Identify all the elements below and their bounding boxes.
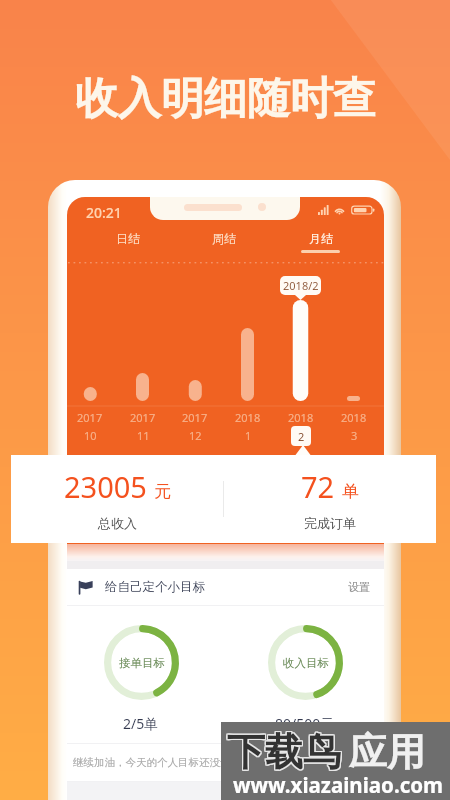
staticText: 72 xyxy=(301,467,335,506)
staticText: 下载鸟 xyxy=(226,728,340,776)
staticText: 下载鸟 xyxy=(227,728,341,776)
button[interactable]: 接单目标 xyxy=(96,625,186,733)
staticText: 月结 xyxy=(309,231,333,246)
other: Goal flag xyxy=(77,579,94,596)
staticText: 12 xyxy=(189,428,202,443)
staticText: 2017 xyxy=(130,410,156,425)
staticText: 应用 xyxy=(349,728,425,776)
staticText: 下载鸟 xyxy=(226,729,340,777)
button[interactable]: 日结 xyxy=(93,231,161,257)
staticText: 80/500元 xyxy=(275,714,335,733)
staticText: www.xiazainiao.com xyxy=(233,771,444,799)
staticText: 2017 xyxy=(182,410,208,425)
staticText: 23005 xyxy=(64,467,147,506)
staticText: 2/5单 xyxy=(123,714,159,733)
staticText: 11 xyxy=(137,428,150,443)
staticText: 下载鸟 xyxy=(227,727,341,775)
staticText: 1 xyxy=(245,428,252,443)
staticText: 给自己定个小目标 xyxy=(105,579,205,595)
staticText: 日结 xyxy=(116,231,140,246)
staticText: 继续加油，今天的个人目标还没达成哦 xyxy=(73,756,252,769)
button[interactable]: 月结 xyxy=(286,231,354,257)
staticText: 2017 xyxy=(77,410,103,425)
staticText: 下载鸟 xyxy=(226,727,340,775)
staticText: 2018 xyxy=(235,410,261,425)
staticText: 完成订单 xyxy=(304,515,356,531)
staticText: 10 xyxy=(84,428,97,443)
staticText: 2018/2 xyxy=(283,278,319,293)
staticText: 收入明细随时查 xyxy=(75,72,376,126)
staticText: 元 xyxy=(154,481,171,502)
staticText: 接单目标 xyxy=(119,656,165,670)
button[interactable]: 72 xyxy=(224,467,436,531)
staticText: 总收入 xyxy=(98,515,137,531)
staticText: 下载鸟 xyxy=(228,727,342,775)
staticText: 设置 xyxy=(348,580,370,594)
staticText: 下载鸟 xyxy=(228,728,342,776)
button[interactable]: 23005 xyxy=(11,467,223,531)
staticText: 20:21 xyxy=(86,203,122,222)
staticText: 下载鸟 xyxy=(227,729,341,777)
button[interactable]: 周结 xyxy=(189,231,257,257)
staticText: 周结 xyxy=(212,231,236,246)
staticText: 2018 xyxy=(341,410,367,425)
staticText: 3 xyxy=(351,428,358,443)
button[interactable]: Goal flag xyxy=(77,569,370,605)
button[interactable]: 收入目标 xyxy=(260,625,350,733)
staticText: 单 xyxy=(342,481,359,502)
staticText: 收入目标 xyxy=(283,656,329,670)
other: Status icons xyxy=(318,205,374,215)
staticText: 2 xyxy=(298,429,305,444)
staticText: 下载鸟 xyxy=(228,729,342,777)
staticText: 2018 xyxy=(288,410,314,425)
